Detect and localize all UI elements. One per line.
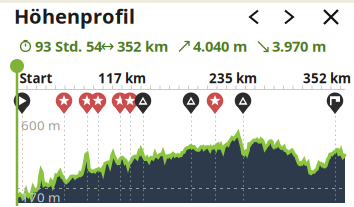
staticText: 352 km	[303, 69, 351, 87]
staticText: 170 m	[21, 188, 60, 206]
button[interactable]: Next	[274, 3, 304, 31]
staticText: 235 km	[209, 69, 257, 87]
staticText: 600 m	[21, 116, 60, 134]
staticText: 117 km	[98, 69, 146, 87]
staticText: Start	[19, 69, 52, 87]
staticText: 3.970 m	[268, 36, 326, 56]
button[interactable]: Close	[315, 2, 347, 32]
staticText: 4.040 m	[189, 36, 247, 56]
staticText: 93 Std. 54	[31, 36, 102, 56]
button[interactable]: Previous	[239, 3, 269, 31]
staticText: Höhenprofil	[14, 3, 135, 29]
staticText: 352 km	[113, 36, 168, 56]
